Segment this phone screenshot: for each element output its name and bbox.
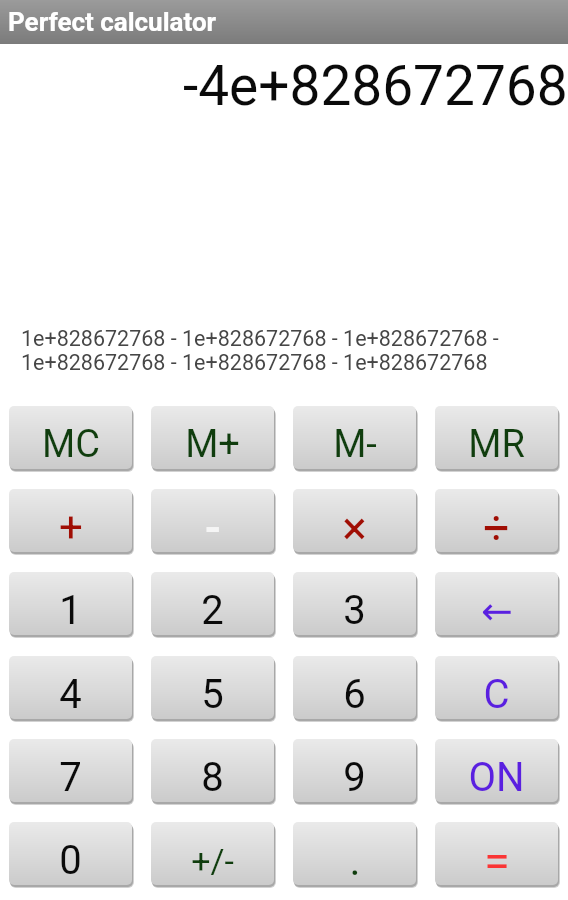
button[interactable]: 2 bbox=[151, 572, 277, 635]
button[interactable]: 1 bbox=[9, 572, 135, 635]
staticText: 8 bbox=[201, 754, 224, 801]
staticText: . bbox=[349, 836, 361, 885]
button[interactable]: 7 bbox=[9, 739, 135, 802]
staticText: ON bbox=[468, 754, 525, 801]
staticText: ÷ bbox=[483, 501, 510, 552]
staticText: M- bbox=[333, 422, 377, 467]
staticText: MR bbox=[468, 422, 525, 467]
staticText: ← bbox=[481, 589, 513, 633]
button[interactable]: 4 bbox=[9, 656, 135, 719]
button[interactable]: Minus bbox=[151, 489, 277, 552]
button[interactable]: 9 bbox=[293, 739, 419, 802]
staticText: 0 bbox=[59, 837, 82, 884]
button[interactable]: 8 bbox=[151, 739, 277, 802]
button[interactable]: Backspace bbox=[435, 572, 561, 635]
button[interactable]: M+ bbox=[151, 406, 277, 469]
staticText: 9 bbox=[343, 754, 366, 801]
button[interactable]: MR bbox=[435, 406, 561, 469]
button[interactable]: 0 bbox=[9, 822, 135, 885]
button[interactable]: 6 bbox=[293, 656, 419, 719]
staticText: 1 bbox=[59, 587, 82, 634]
button[interactable]: M- bbox=[293, 406, 419, 469]
button[interactable]: Decimal point bbox=[293, 822, 419, 885]
staticText: + bbox=[59, 503, 83, 552]
staticText: 5 bbox=[201, 671, 224, 718]
staticText: - bbox=[204, 502, 222, 552]
staticText: C bbox=[483, 671, 510, 718]
button[interactable]: Multiply bbox=[293, 489, 419, 552]
button[interactable]: 5 bbox=[151, 656, 277, 719]
staticText: 7 bbox=[59, 754, 82, 801]
staticText: 2 bbox=[201, 587, 224, 634]
staticText: -4e+828672768 bbox=[183, 54, 568, 118]
staticText: = bbox=[484, 833, 510, 885]
button[interactable]: MC bbox=[9, 406, 135, 469]
staticText: MC bbox=[42, 422, 100, 467]
staticText: × bbox=[342, 501, 367, 552]
staticText: 4 bbox=[59, 671, 82, 718]
staticText: M+ bbox=[185, 422, 240, 467]
button[interactable]: C bbox=[435, 656, 561, 719]
staticText: 6 bbox=[343, 671, 366, 718]
staticText: 1e+828672768 - 1e+828672768 - 1e+8286727… bbox=[21, 326, 521, 375]
staticText: +/- bbox=[191, 841, 234, 881]
button[interactable]: Plus bbox=[9, 489, 135, 552]
button[interactable]: 3 bbox=[293, 572, 419, 635]
button[interactable]: ON bbox=[435, 739, 561, 802]
button[interactable]: Equals bbox=[435, 822, 561, 885]
button[interactable]: Divide bbox=[435, 489, 561, 552]
staticText: Perfect calculator bbox=[8, 7, 217, 37]
staticText: 3 bbox=[343, 587, 366, 634]
button[interactable]: +/- bbox=[151, 822, 277, 885]
